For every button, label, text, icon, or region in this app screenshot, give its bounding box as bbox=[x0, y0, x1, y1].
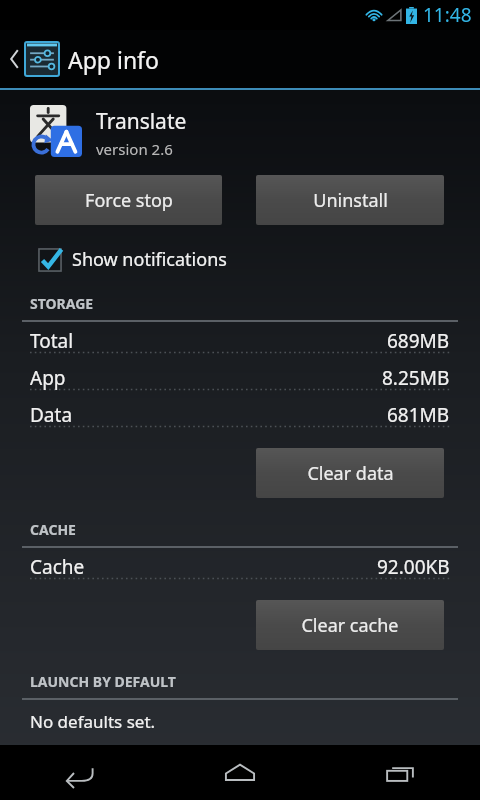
button[interactable]: Force stop bbox=[35, 175, 222, 225]
button[interactable]: Clear data bbox=[256, 448, 444, 498]
staticText: Clear data bbox=[307, 461, 394, 486]
staticText: version 2.6 bbox=[96, 139, 173, 159]
button[interactable]: Show notifications bbox=[38, 245, 235, 274]
button[interactable]: Uninstall bbox=[256, 175, 444, 225]
staticText: Translate bbox=[96, 107, 187, 136]
staticText: Total bbox=[30, 328, 74, 354]
staticText: Show notifications bbox=[72, 247, 227, 272]
staticText: Cache bbox=[30, 554, 85, 580]
staticText: Data bbox=[30, 402, 73, 428]
staticText: 689MB bbox=[387, 328, 450, 354]
button[interactable]: Clear cache bbox=[256, 600, 444, 650]
staticText: App bbox=[30, 365, 66, 391]
staticText: 11:48 bbox=[423, 2, 472, 28]
staticText: 8.25MB bbox=[382, 365, 450, 391]
staticText: Force stop bbox=[85, 188, 173, 213]
staticText: LAUNCH BY DEFAULT bbox=[30, 672, 176, 691]
staticText: 92.00KB bbox=[377, 554, 450, 580]
staticText: Uninstall bbox=[313, 188, 388, 213]
staticText: CACHE bbox=[30, 520, 76, 539]
staticText: Clear cache bbox=[301, 613, 399, 638]
staticText: No defaults set. bbox=[30, 710, 156, 733]
button[interactable]: Home bbox=[160, 745, 320, 800]
staticText: App info bbox=[68, 44, 159, 75]
button[interactable]: Recent apps bbox=[320, 745, 480, 800]
staticText: STORAGE bbox=[30, 294, 94, 313]
button[interactable]: Navigate up, App info bbox=[0, 30, 480, 88]
button[interactable]: Back bbox=[0, 745, 160, 800]
staticText: 681MB bbox=[387, 402, 450, 428]
